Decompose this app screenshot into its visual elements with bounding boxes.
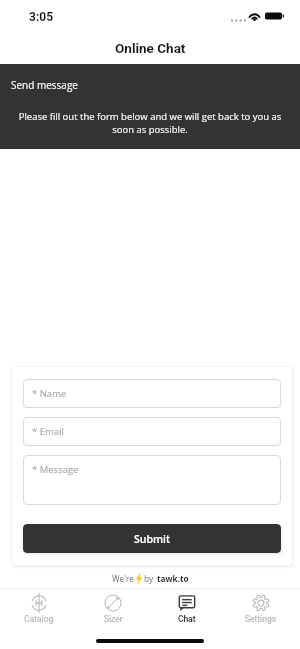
staticText: Sizer [104,614,123,624]
staticText: We're [112,573,134,584]
staticText: * Email [32,425,64,438]
staticText: Chat [178,614,196,624]
button[interactable]: Catalog [4,589,74,625]
button[interactable]: * Message [23,455,281,505]
staticText: 3:05 [29,10,54,24]
staticText: Online Chat [115,40,186,56]
staticText: Catalog [24,614,54,624]
staticText: by [144,573,154,584]
button[interactable]: * Name [23,379,281,408]
staticText: Send message [11,78,78,92]
staticText: * Message [32,463,79,476]
staticText: Please fill out the form below and we wi… [14,110,286,136]
button[interactable]: Chat [152,589,222,625]
button[interactable]: Settings [226,589,296,625]
button[interactable]: * Email [23,417,281,446]
staticText: Settings [245,614,277,624]
button[interactable]: Sizer [78,589,148,625]
staticText: * Name [32,387,67,400]
staticText: Submit [134,532,171,546]
staticText: tawk.to [157,573,189,584]
button[interactable]: Submit [23,524,281,553]
